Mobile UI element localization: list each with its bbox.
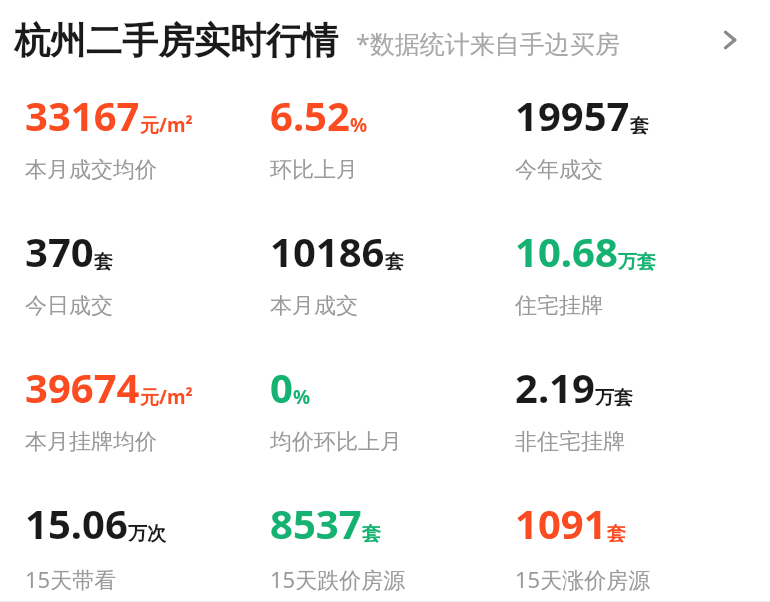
staticText: 15天跌价房源 xyxy=(270,564,406,594)
staticText: *数据统计来自手边买房 xyxy=(356,26,620,60)
button[interactable]: 39674 xyxy=(25,360,270,456)
staticText: 2.19 xyxy=(515,360,595,414)
staticText: 杭州二手房实时行情 xyxy=(14,18,338,63)
staticText: 0 xyxy=(270,360,293,414)
staticText: 6.52 xyxy=(270,88,350,142)
staticText: 套 xyxy=(607,522,626,546)
staticText: 万套 xyxy=(618,250,656,274)
button[interactable]: 19957 xyxy=(515,88,760,184)
button[interactable]: 1091 xyxy=(515,496,760,594)
button[interactable]: 0 xyxy=(270,360,515,456)
staticText: 今年成交 xyxy=(515,156,603,184)
staticText: 元/m² xyxy=(140,384,193,410)
staticText: 15天涨价房源 xyxy=(515,564,651,594)
staticText: 15天带看 xyxy=(25,564,117,594)
staticText: 均价环比上月 xyxy=(270,428,402,456)
button[interactable]: 查看详情 xyxy=(708,18,752,62)
staticText: % xyxy=(350,112,368,138)
staticText: 15.06 xyxy=(25,496,128,550)
staticText: 1091 xyxy=(515,496,607,550)
staticText: % xyxy=(293,384,311,410)
staticText: 33167 xyxy=(25,88,140,142)
staticText: 本月成交均价 xyxy=(25,156,157,184)
staticText: 19957 xyxy=(515,88,630,142)
staticText: 8537 xyxy=(270,496,362,550)
button[interactable]: 8537 xyxy=(270,496,515,594)
staticText: 套 xyxy=(385,250,404,274)
button[interactable]: 33167 xyxy=(25,88,270,184)
staticText: 今日成交 xyxy=(25,292,113,320)
staticText: 万套 xyxy=(595,386,633,410)
staticText: 非住宅挂牌 xyxy=(515,428,625,456)
staticText: 本月成交 xyxy=(270,292,358,320)
staticText: 万次 xyxy=(128,522,166,546)
staticText: 套 xyxy=(630,114,649,138)
staticText: 10186 xyxy=(270,224,385,278)
staticText: 套 xyxy=(362,522,381,546)
button[interactable]: 杭州二手房实时行情 xyxy=(0,0,770,80)
button[interactable]: 15.06 xyxy=(25,496,270,594)
staticText: 环比上月 xyxy=(270,156,358,184)
staticText: 本月挂牌均价 xyxy=(25,428,157,456)
button[interactable]: 10.68 xyxy=(515,224,760,320)
staticText: 元/m² xyxy=(140,112,193,138)
button[interactable]: 6.52 xyxy=(270,88,515,184)
staticText: 住宅挂牌 xyxy=(515,292,603,320)
staticText: 10.68 xyxy=(515,224,618,278)
staticText: 39674 xyxy=(25,360,140,414)
button[interactable]: 10186 xyxy=(270,224,515,320)
staticText: 套 xyxy=(94,250,113,274)
button[interactable]: 2.19 xyxy=(515,360,760,456)
staticText: 370 xyxy=(25,224,94,278)
button[interactable]: 370 xyxy=(25,224,270,320)
